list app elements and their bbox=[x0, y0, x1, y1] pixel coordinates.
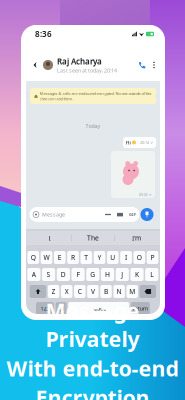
button[interactable]: K bbox=[130, 268, 143, 281]
staticText: U bbox=[110, 253, 115, 262]
button[interactable]: L bbox=[145, 268, 158, 281]
button[interactable]: X bbox=[61, 285, 72, 298]
staticText: 20:32 bbox=[138, 192, 147, 197]
button[interactable]: I bbox=[120, 251, 132, 264]
staticText: W bbox=[43, 253, 49, 262]
button[interactable]: Record voice message bbox=[140, 208, 153, 221]
staticText: K bbox=[135, 270, 139, 279]
staticText: Y bbox=[97, 253, 101, 262]
staticText: Raj Acharya bbox=[57, 56, 102, 67]
staticText: O bbox=[137, 253, 142, 262]
button[interactable]: Delete bbox=[139, 285, 156, 298]
button[interactable]: space bbox=[68, 302, 129, 315]
staticText: J bbox=[121, 270, 123, 279]
button[interactable]: R bbox=[67, 251, 79, 264]
staticText: Hi bbox=[125, 139, 130, 146]
staticText: I bbox=[48, 234, 50, 242]
button[interactable]: Shift bbox=[30, 285, 46, 298]
button[interactable]: Raj Acharya bbox=[43, 57, 123, 73]
button[interactable]: A bbox=[27, 268, 40, 281]
staticText: M bbox=[129, 287, 135, 296]
button[interactable]: 123 bbox=[36, 302, 54, 315]
staticText: Q bbox=[31, 253, 36, 262]
staticText: Message Privately bbox=[45, 296, 139, 353]
staticText: S bbox=[47, 270, 51, 279]
button[interactable]: return bbox=[131, 302, 150, 315]
staticText: space bbox=[91, 305, 106, 312]
staticText: Last seen at today, 20:14 bbox=[57, 67, 117, 74]
staticText: N bbox=[117, 287, 122, 296]
button[interactable]: I'm bbox=[115, 231, 158, 245]
staticText: I bbox=[125, 253, 127, 262]
staticText: C bbox=[78, 287, 82, 296]
button[interactable]: W bbox=[41, 251, 52, 264]
staticText: GIF bbox=[129, 212, 136, 217]
staticText: P bbox=[151, 253, 155, 262]
button[interactable]: Z bbox=[48, 285, 59, 298]
staticText: B bbox=[104, 287, 108, 296]
staticText: With end-to-end bbox=[6, 354, 178, 382]
button[interactable]: U bbox=[107, 251, 119, 264]
staticText: E bbox=[58, 253, 62, 262]
staticText: Today bbox=[85, 122, 100, 130]
staticText: 8:36 bbox=[35, 29, 52, 39]
button[interactable]: Emoji bbox=[56, 302, 67, 315]
staticText: return bbox=[133, 305, 148, 312]
button[interactable]: C bbox=[74, 285, 86, 298]
staticText: Z bbox=[52, 287, 56, 296]
staticText: Message bbox=[42, 211, 65, 218]
staticText: Encryption bbox=[35, 383, 149, 400]
staticText: D bbox=[61, 270, 66, 279]
button[interactable]: Call bbox=[136, 59, 148, 71]
button[interactable]: I bbox=[28, 231, 71, 245]
staticText: G bbox=[90, 270, 95, 279]
staticText: H bbox=[105, 270, 110, 279]
staticText: The bbox=[87, 234, 99, 242]
button[interactable]: T bbox=[80, 251, 92, 264]
button[interactable]: P bbox=[147, 251, 158, 264]
button[interactable]: D bbox=[57, 268, 70, 281]
staticText: F bbox=[77, 270, 80, 279]
button[interactable]: S bbox=[42, 268, 55, 281]
button[interactable]: N bbox=[113, 285, 125, 298]
button[interactable]: E bbox=[54, 251, 66, 264]
staticText: R bbox=[71, 253, 75, 262]
button[interactable]: G bbox=[86, 268, 99, 281]
staticText: L bbox=[150, 270, 153, 279]
staticText: 20:14 bbox=[140, 140, 149, 145]
staticText: A bbox=[32, 270, 36, 279]
button[interactable]: J bbox=[116, 268, 129, 281]
staticText: I'm bbox=[132, 234, 141, 242]
staticText: Messages & calls are end-to-end encrypte… bbox=[39, 91, 151, 101]
button[interactable]: More options bbox=[149, 59, 159, 71]
staticText: T bbox=[84, 253, 88, 262]
staticText: 123 bbox=[40, 305, 49, 312]
button[interactable]: The bbox=[71, 231, 114, 245]
button[interactable]: Y bbox=[94, 251, 105, 264]
button[interactable]: O bbox=[133, 251, 145, 264]
button[interactable]: F bbox=[71, 268, 85, 281]
button[interactable]: M bbox=[126, 285, 138, 298]
staticText: V bbox=[91, 287, 95, 296]
button[interactable]: Q bbox=[27, 251, 39, 264]
button[interactable]: V bbox=[87, 285, 99, 298]
button[interactable]: H bbox=[101, 268, 114, 281]
staticText: X bbox=[65, 287, 69, 296]
button[interactable]: Back bbox=[30, 58, 40, 72]
button[interactable]: B bbox=[100, 285, 112, 298]
